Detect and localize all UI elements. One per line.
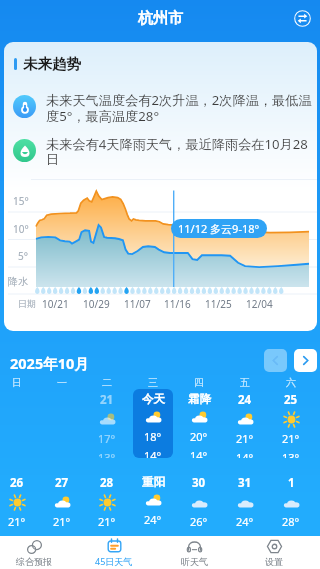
staticText: 11/12 多云9-18° [178, 221, 260, 236]
button[interactable]: 27 [42, 472, 82, 528]
staticText: 未来趋势 [23, 55, 81, 73]
staticText: 未来天气温度会有2次升温，2次降温，最低温度5°，最高温度28° [46, 91, 316, 125]
staticText: 17° [98, 431, 116, 446]
button[interactable]: 1 [271, 472, 311, 528]
button[interactable]: 31 [225, 472, 265, 528]
staticText: 10° [13, 222, 29, 236]
button[interactable]: 30 [179, 472, 219, 528]
staticText: 未来会有4天降雨天气，最近降雨会在10月28日 [46, 135, 316, 168]
staticText: 三 [148, 376, 158, 389]
button[interactable]: 28 [87, 472, 127, 528]
staticText: 13° [282, 450, 300, 458]
staticText: 5° [18, 249, 28, 263]
staticText: 14° [190, 448, 208, 458]
staticText: 11/25 [205, 297, 232, 311]
staticText: 21° [282, 431, 300, 446]
staticText: 霜降 [188, 392, 211, 406]
staticText: 综合预报 [16, 556, 52, 567]
button[interactable]: 霜降 [179, 389, 219, 458]
staticText: 25 [284, 392, 298, 408]
staticText: 30 [192, 475, 206, 491]
staticText: 26 [10, 475, 24, 491]
staticText: 11/16 [164, 297, 191, 311]
staticText: 11/07 [124, 297, 151, 311]
staticText: 21° [236, 431, 254, 446]
staticText: 四 [194, 376, 204, 389]
button[interactable]: 上个月 [264, 349, 287, 372]
button[interactable]: 设置 [234, 536, 314, 569]
staticText: 24° [236, 514, 254, 528]
staticText: 14° [236, 450, 254, 458]
staticText: 杭州市 [138, 9, 183, 28]
button[interactable]: 综合预报 [0, 536, 74, 569]
staticText: 21° [8, 514, 26, 528]
staticText: 日期 [18, 298, 36, 309]
staticText: 10/29 [83, 297, 110, 311]
staticText: 28 [100, 475, 114, 491]
button[interactable]: 切换城市 [289, 5, 315, 31]
button[interactable]: 下个月 [294, 349, 317, 372]
staticText: 降水 [8, 275, 28, 288]
staticText: 21 [100, 392, 114, 408]
button[interactable]: 26 [0, 472, 37, 528]
staticText: 一 [57, 376, 67, 389]
button[interactable]: 25 [271, 389, 311, 458]
staticText: 18° [144, 429, 162, 444]
staticText: 21° [53, 514, 71, 528]
staticText: 日 [12, 376, 22, 389]
staticText: 2025年10月 [10, 353, 89, 373]
staticText: 今天 [142, 392, 165, 406]
staticText: 24° [144, 512, 162, 527]
staticText: 20° [190, 429, 208, 444]
staticText: 31 [238, 475, 252, 491]
button[interactable]: 24 [225, 389, 265, 458]
staticText: 27 [55, 475, 69, 491]
staticText: 听天气 [181, 556, 208, 567]
staticText: 12/04 [246, 297, 273, 311]
staticText: 13° [98, 450, 116, 458]
button[interactable]: 重阳 [133, 472, 173, 528]
staticText: 设置 [265, 556, 283, 567]
button[interactable]: 听天气 [154, 536, 234, 569]
staticText: 15° [13, 194, 29, 208]
staticText: 10/21 [42, 297, 69, 311]
staticText: 45日天气 [95, 555, 133, 567]
button[interactable]: 今天 [133, 389, 173, 458]
button[interactable]: 21 [87, 389, 127, 458]
staticText: 24 [238, 392, 252, 408]
staticText: 26° [190, 514, 208, 528]
staticText: 二 [102, 376, 112, 389]
staticText: 六 [286, 376, 296, 389]
staticText: 五 [240, 376, 250, 389]
staticText: 14° [144, 448, 162, 458]
button[interactable]: 45日天气 [74, 536, 154, 569]
staticText: 重阳 [142, 475, 165, 489]
staticText: 28° [282, 514, 300, 528]
staticText: 21° [98, 514, 116, 528]
staticText: 1 [288, 475, 295, 491]
